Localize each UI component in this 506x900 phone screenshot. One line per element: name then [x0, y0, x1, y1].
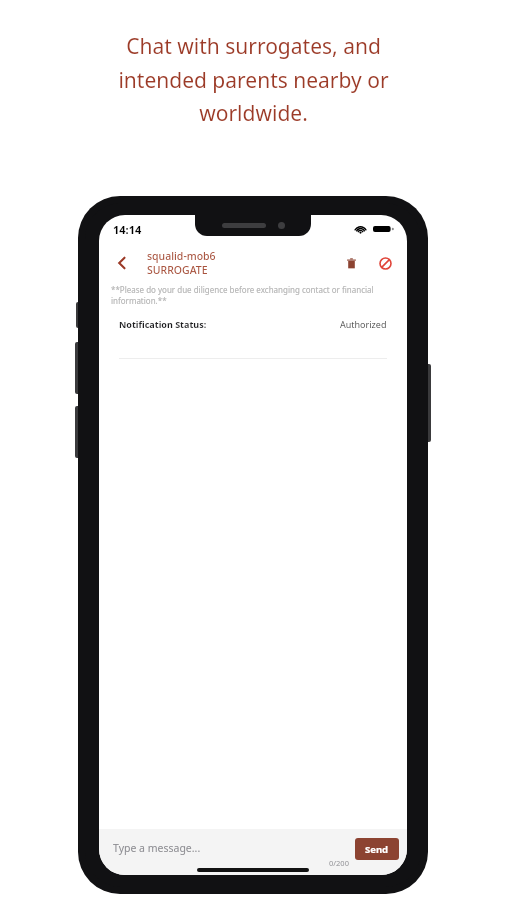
- staticText: squalid-mob6: [147, 249, 216, 263]
- button[interactable]: Type a message...: [113, 841, 201, 855]
- staticText: 14:14: [113, 222, 142, 237]
- staticText: Send: [365, 843, 389, 856]
- staticText: Notification Status:: [119, 318, 207, 330]
- staticText: Authorized: [340, 318, 387, 330]
- button[interactable]: Back: [109, 250, 135, 276]
- button[interactable]: Delete chat: [339, 251, 363, 275]
- staticText: Chat with surrogates, and intended paren…: [118, 32, 389, 127]
- staticText: SURROGATE: [147, 263, 208, 277]
- staticText: **Please do your due diligence before ex…: [111, 284, 391, 306]
- button[interactable]: Block user: [373, 251, 397, 275]
- staticText: 0/200: [329, 858, 349, 868]
- button[interactable]: Send: [355, 838, 399, 860]
